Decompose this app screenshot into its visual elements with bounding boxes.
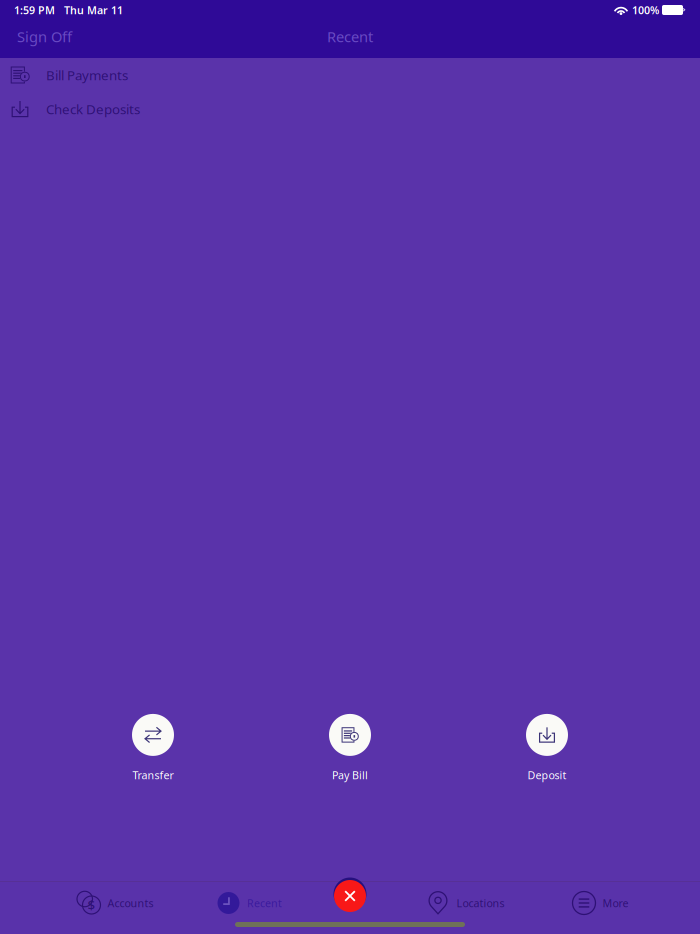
staticText: Pay Bill	[332, 768, 368, 782]
button[interactable]: $	[76, 880, 153, 925]
staticText: Bill Payments	[46, 66, 128, 84]
button[interactable]: Check Deposits	[0, 92, 700, 126]
staticText: Thu Mar 11	[55, 3, 123, 17]
staticText: Check Deposits	[46, 100, 140, 118]
button[interactable]: Bill Payments	[0, 58, 700, 92]
staticText: Recent	[247, 896, 282, 910]
staticText: More	[602, 896, 628, 910]
button[interactable]: Sign Off	[0, 20, 89, 53]
button[interactable]: Pay Bill	[329, 714, 371, 782]
staticText: Sign Off	[17, 27, 72, 46]
button[interactable]: Locations	[425, 880, 504, 925]
staticText: Deposit	[527, 768, 566, 782]
button[interactable]: Recent	[216, 880, 282, 925]
staticText: $	[87, 896, 95, 914]
staticText: Accounts	[107, 896, 153, 910]
staticText: Transfer	[132, 768, 173, 782]
button[interactable]: More	[571, 880, 628, 925]
staticText: 100%	[629, 3, 662, 17]
staticText: 1:59 PM	[14, 3, 55, 17]
staticText: Locations	[456, 896, 504, 910]
button[interactable]: Deposit	[526, 714, 568, 782]
button[interactable]: Transfer	[132, 714, 174, 782]
staticText: Recent	[327, 27, 373, 46]
button[interactable]: Close	[334, 880, 366, 912]
